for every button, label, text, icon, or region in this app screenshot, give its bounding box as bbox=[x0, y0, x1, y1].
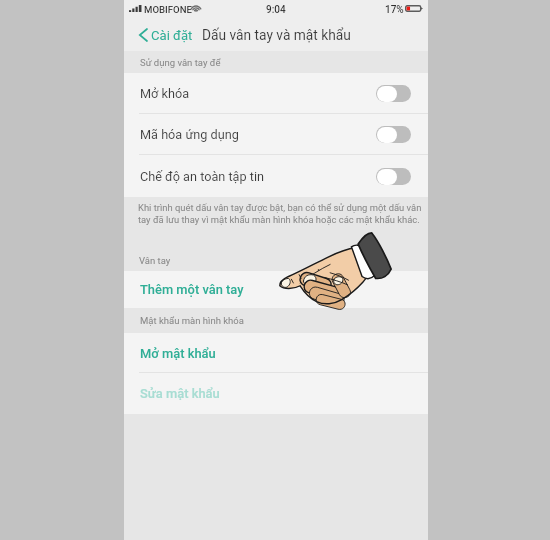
staticText: Sử dụng vân tay để bbox=[140, 57, 221, 68]
staticText: Mật khẩu màn hình khóa bbox=[140, 315, 244, 326]
staticText: Sửa mật khẩu bbox=[140, 386, 220, 401]
staticText: Vân tay bbox=[139, 255, 171, 266]
staticText: 9:04 bbox=[266, 4, 286, 16]
staticText: Khi trình quét dấu vân tay được bật, bạn… bbox=[138, 202, 422, 226]
button[interactable]: Chế độ an toàn tập tin bbox=[124, 155, 428, 197]
button[interactable]: Sửa mật khẩu bbox=[124, 373, 428, 414]
button[interactable]: Cài đặt bbox=[135, 19, 199, 51]
staticText: Cài đặt bbox=[151, 28, 193, 43]
staticText: MOBIFONE bbox=[144, 4, 192, 15]
button[interactable]: Mã hóa ứng dụng bbox=[124, 114, 428, 155]
button[interactable]: Mở mật khẩu bbox=[124, 333, 428, 373]
button[interactable]: Mở khóa bbox=[124, 73, 428, 114]
staticText: Thêm một vân tay bbox=[140, 282, 244, 297]
button[interactable]: Thêm một vân tay bbox=[124, 271, 428, 308]
staticText: 17% bbox=[385, 4, 404, 16]
staticText: Mã hóa ứng dụng bbox=[140, 127, 239, 142]
staticText: Mở khóa bbox=[140, 86, 190, 101]
staticText: Chế độ an toàn tập tin bbox=[140, 169, 265, 184]
staticText: Mở mật khẩu bbox=[140, 346, 216, 361]
staticText: Dấu vân tay và mật khẩu bbox=[202, 27, 351, 43]
